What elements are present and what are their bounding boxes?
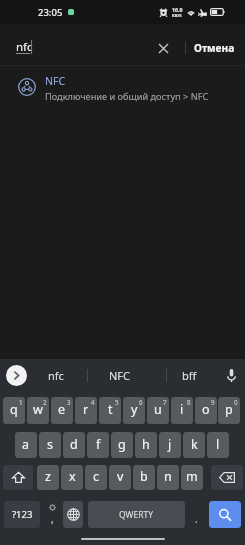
staticText: v xyxy=(117,468,124,485)
button[interactable]: l xyxy=(207,432,229,458)
button[interactable]: z xyxy=(37,465,59,490)
button[interactable]: i xyxy=(171,397,193,424)
staticText: p xyxy=(225,401,233,418)
button[interactable]: k xyxy=(183,432,205,458)
staticText: g xyxy=(118,436,126,453)
staticText: 7 xyxy=(163,398,167,406)
button[interactable]: Keyboard settings xyxy=(42,501,62,528)
staticText: 0 xyxy=(234,398,238,406)
staticText: Подключение и общий доступ > NFC xyxy=(45,90,209,103)
staticText: z xyxy=(45,468,51,485)
staticText: 9 xyxy=(211,398,215,406)
button[interactable]: r xyxy=(75,397,97,424)
staticText: r xyxy=(83,401,89,418)
staticText: y xyxy=(131,401,138,418)
staticText: 8 xyxy=(187,398,191,406)
button[interactable]: NFC xyxy=(100,360,140,391)
staticText: m xyxy=(186,468,198,485)
button[interactable]: q xyxy=(3,397,25,424)
button[interactable]: e xyxy=(51,397,73,424)
button[interactable]: b xyxy=(133,465,155,490)
staticText: h xyxy=(142,436,150,453)
staticText: NFC xyxy=(45,74,66,88)
button[interactable]: y xyxy=(123,397,145,424)
button[interactable]: g xyxy=(111,432,133,458)
staticText: n xyxy=(164,468,172,485)
staticText: 5 xyxy=(115,398,119,406)
staticText: q xyxy=(10,401,18,418)
staticText: e xyxy=(58,401,66,418)
staticText: 16.0 xyxy=(172,6,183,13)
button[interactable]: m xyxy=(181,465,203,490)
button[interactable]: bff xyxy=(169,360,209,391)
staticText: . xyxy=(195,512,198,526)
button[interactable]: Search xyxy=(209,501,241,528)
button[interactable]: Period xyxy=(186,501,206,528)
button[interactable]: nfc xyxy=(36,360,76,391)
button[interactable]: j xyxy=(159,432,181,458)
button[interactable]: Backspace xyxy=(211,465,243,490)
staticText: QWERTY xyxy=(119,509,154,521)
button[interactable]: a xyxy=(15,432,37,458)
staticText: NFC xyxy=(109,368,131,383)
staticText: w xyxy=(33,401,43,418)
button[interactable]: QWERTY xyxy=(88,501,185,528)
staticText: i xyxy=(180,401,184,418)
staticText: 1 xyxy=(19,398,23,406)
staticText: 3 xyxy=(67,398,71,406)
staticText: d xyxy=(70,436,78,453)
button[interactable]: v xyxy=(109,465,131,490)
staticText: o xyxy=(202,401,210,418)
staticText: l xyxy=(216,436,220,453)
staticText: s xyxy=(47,436,53,453)
staticText: bff xyxy=(182,368,197,383)
staticText: u xyxy=(154,401,162,418)
button[interactable]: x xyxy=(61,465,83,490)
button[interactable]: p xyxy=(218,397,240,424)
button[interactable]: c xyxy=(85,465,107,490)
staticText: 4 xyxy=(91,398,95,406)
button[interactable]: Expand suggestions xyxy=(6,365,27,386)
button[interactable]: w xyxy=(27,397,49,424)
staticText: nfc xyxy=(48,368,64,383)
staticText: ?123 xyxy=(12,508,33,521)
staticText: b xyxy=(140,468,148,485)
staticText: KB/S xyxy=(172,13,182,19)
button[interactable]: Shift xyxy=(3,465,33,490)
staticText: 2 xyxy=(43,398,47,406)
button[interactable]: h xyxy=(135,432,157,458)
staticText: 6 xyxy=(139,398,143,406)
staticText: t xyxy=(108,401,113,418)
staticText: c xyxy=(93,468,100,485)
button[interactable]: n xyxy=(157,465,179,490)
button[interactable]: o xyxy=(195,397,217,424)
staticText: x xyxy=(69,468,76,485)
button[interactable]: Voice input xyxy=(224,366,239,385)
button[interactable]: ?123 xyxy=(4,501,40,528)
staticText: , xyxy=(51,512,54,526)
button[interactable]: s xyxy=(39,432,61,458)
staticText: k xyxy=(191,436,198,453)
staticText: j xyxy=(168,436,172,453)
staticText: Отмена xyxy=(194,41,235,55)
button[interactable]: Clear query xyxy=(151,30,175,66)
button[interactable]: f xyxy=(87,432,109,458)
staticText: 23:05 xyxy=(38,6,63,19)
button[interactable]: NFC xyxy=(0,70,245,106)
staticText: f xyxy=(96,436,101,453)
button[interactable]: t xyxy=(99,397,121,424)
button[interactable]: d xyxy=(63,432,85,458)
staticText: a xyxy=(22,436,30,453)
button[interactable]: u xyxy=(147,397,169,424)
button[interactable]: Отмена xyxy=(190,30,238,66)
staticText: nfc xyxy=(16,39,33,55)
button[interactable]: Switch language xyxy=(63,501,83,528)
